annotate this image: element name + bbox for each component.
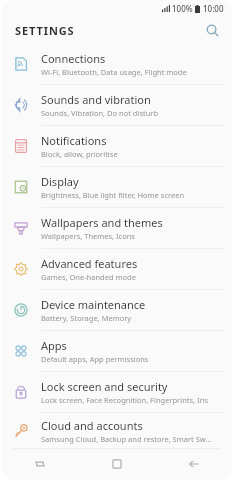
staticText: Sounds and vibration xyxy=(41,92,151,107)
staticText: Wallpapers, Themes, Icons xyxy=(41,231,135,241)
button[interactable]: Apps xyxy=(1,331,232,371)
button[interactable]: Connections xyxy=(1,44,232,84)
button[interactable]: Notifications xyxy=(1,126,232,166)
staticText: Default apps, App permissions xyxy=(41,354,149,364)
button[interactable]: Cloud and accounts xyxy=(1,413,232,448)
button[interactable]: Display xyxy=(1,167,232,207)
staticText: Wallpapers and themes xyxy=(41,215,163,230)
button[interactable]: Advanced features xyxy=(1,249,232,289)
staticText: Sounds, Vibration, Do not disturb xyxy=(41,108,159,118)
staticText: Notifications xyxy=(41,133,107,148)
button[interactable]: Back xyxy=(155,448,232,480)
staticText: 10:00 xyxy=(203,3,224,14)
button[interactable]: Lock screen and security xyxy=(1,372,232,412)
staticText: SETTINGS xyxy=(15,23,75,38)
staticText: Block, allow, prioritise xyxy=(41,149,118,159)
button[interactable]: Sounds and vibration xyxy=(1,85,232,125)
staticText: Display xyxy=(41,174,79,189)
staticText: Advanced features xyxy=(41,256,138,271)
button[interactable]: Search xyxy=(200,18,224,42)
staticText: Device maintenance xyxy=(41,297,146,312)
staticText: Games, One-handed mode xyxy=(41,272,136,282)
button[interactable]: Recents xyxy=(1,448,78,480)
staticText: Lock screen, Face Recognition, Fingerpri… xyxy=(41,395,209,405)
staticText: Lock screen and security xyxy=(41,379,168,394)
staticText: Cloud and accounts xyxy=(41,418,143,433)
staticText: Brightness, Blue light filter, Home scre… xyxy=(41,190,185,200)
staticText: Connections xyxy=(41,51,106,66)
button[interactable]: Device maintenance xyxy=(1,290,232,330)
staticText: Battery, Storage, Memory xyxy=(41,313,132,323)
staticText: Apps xyxy=(41,338,67,353)
staticText: Wi-Fi, Bluetooth, Data usage, Flight mod… xyxy=(41,67,187,77)
staticText: Samsung Cloud, Backup and restore, Smart… xyxy=(41,434,212,444)
button[interactable]: Wallpapers and themes xyxy=(1,208,232,248)
button[interactable]: Home xyxy=(78,448,155,480)
staticText: 100% xyxy=(172,3,193,14)
